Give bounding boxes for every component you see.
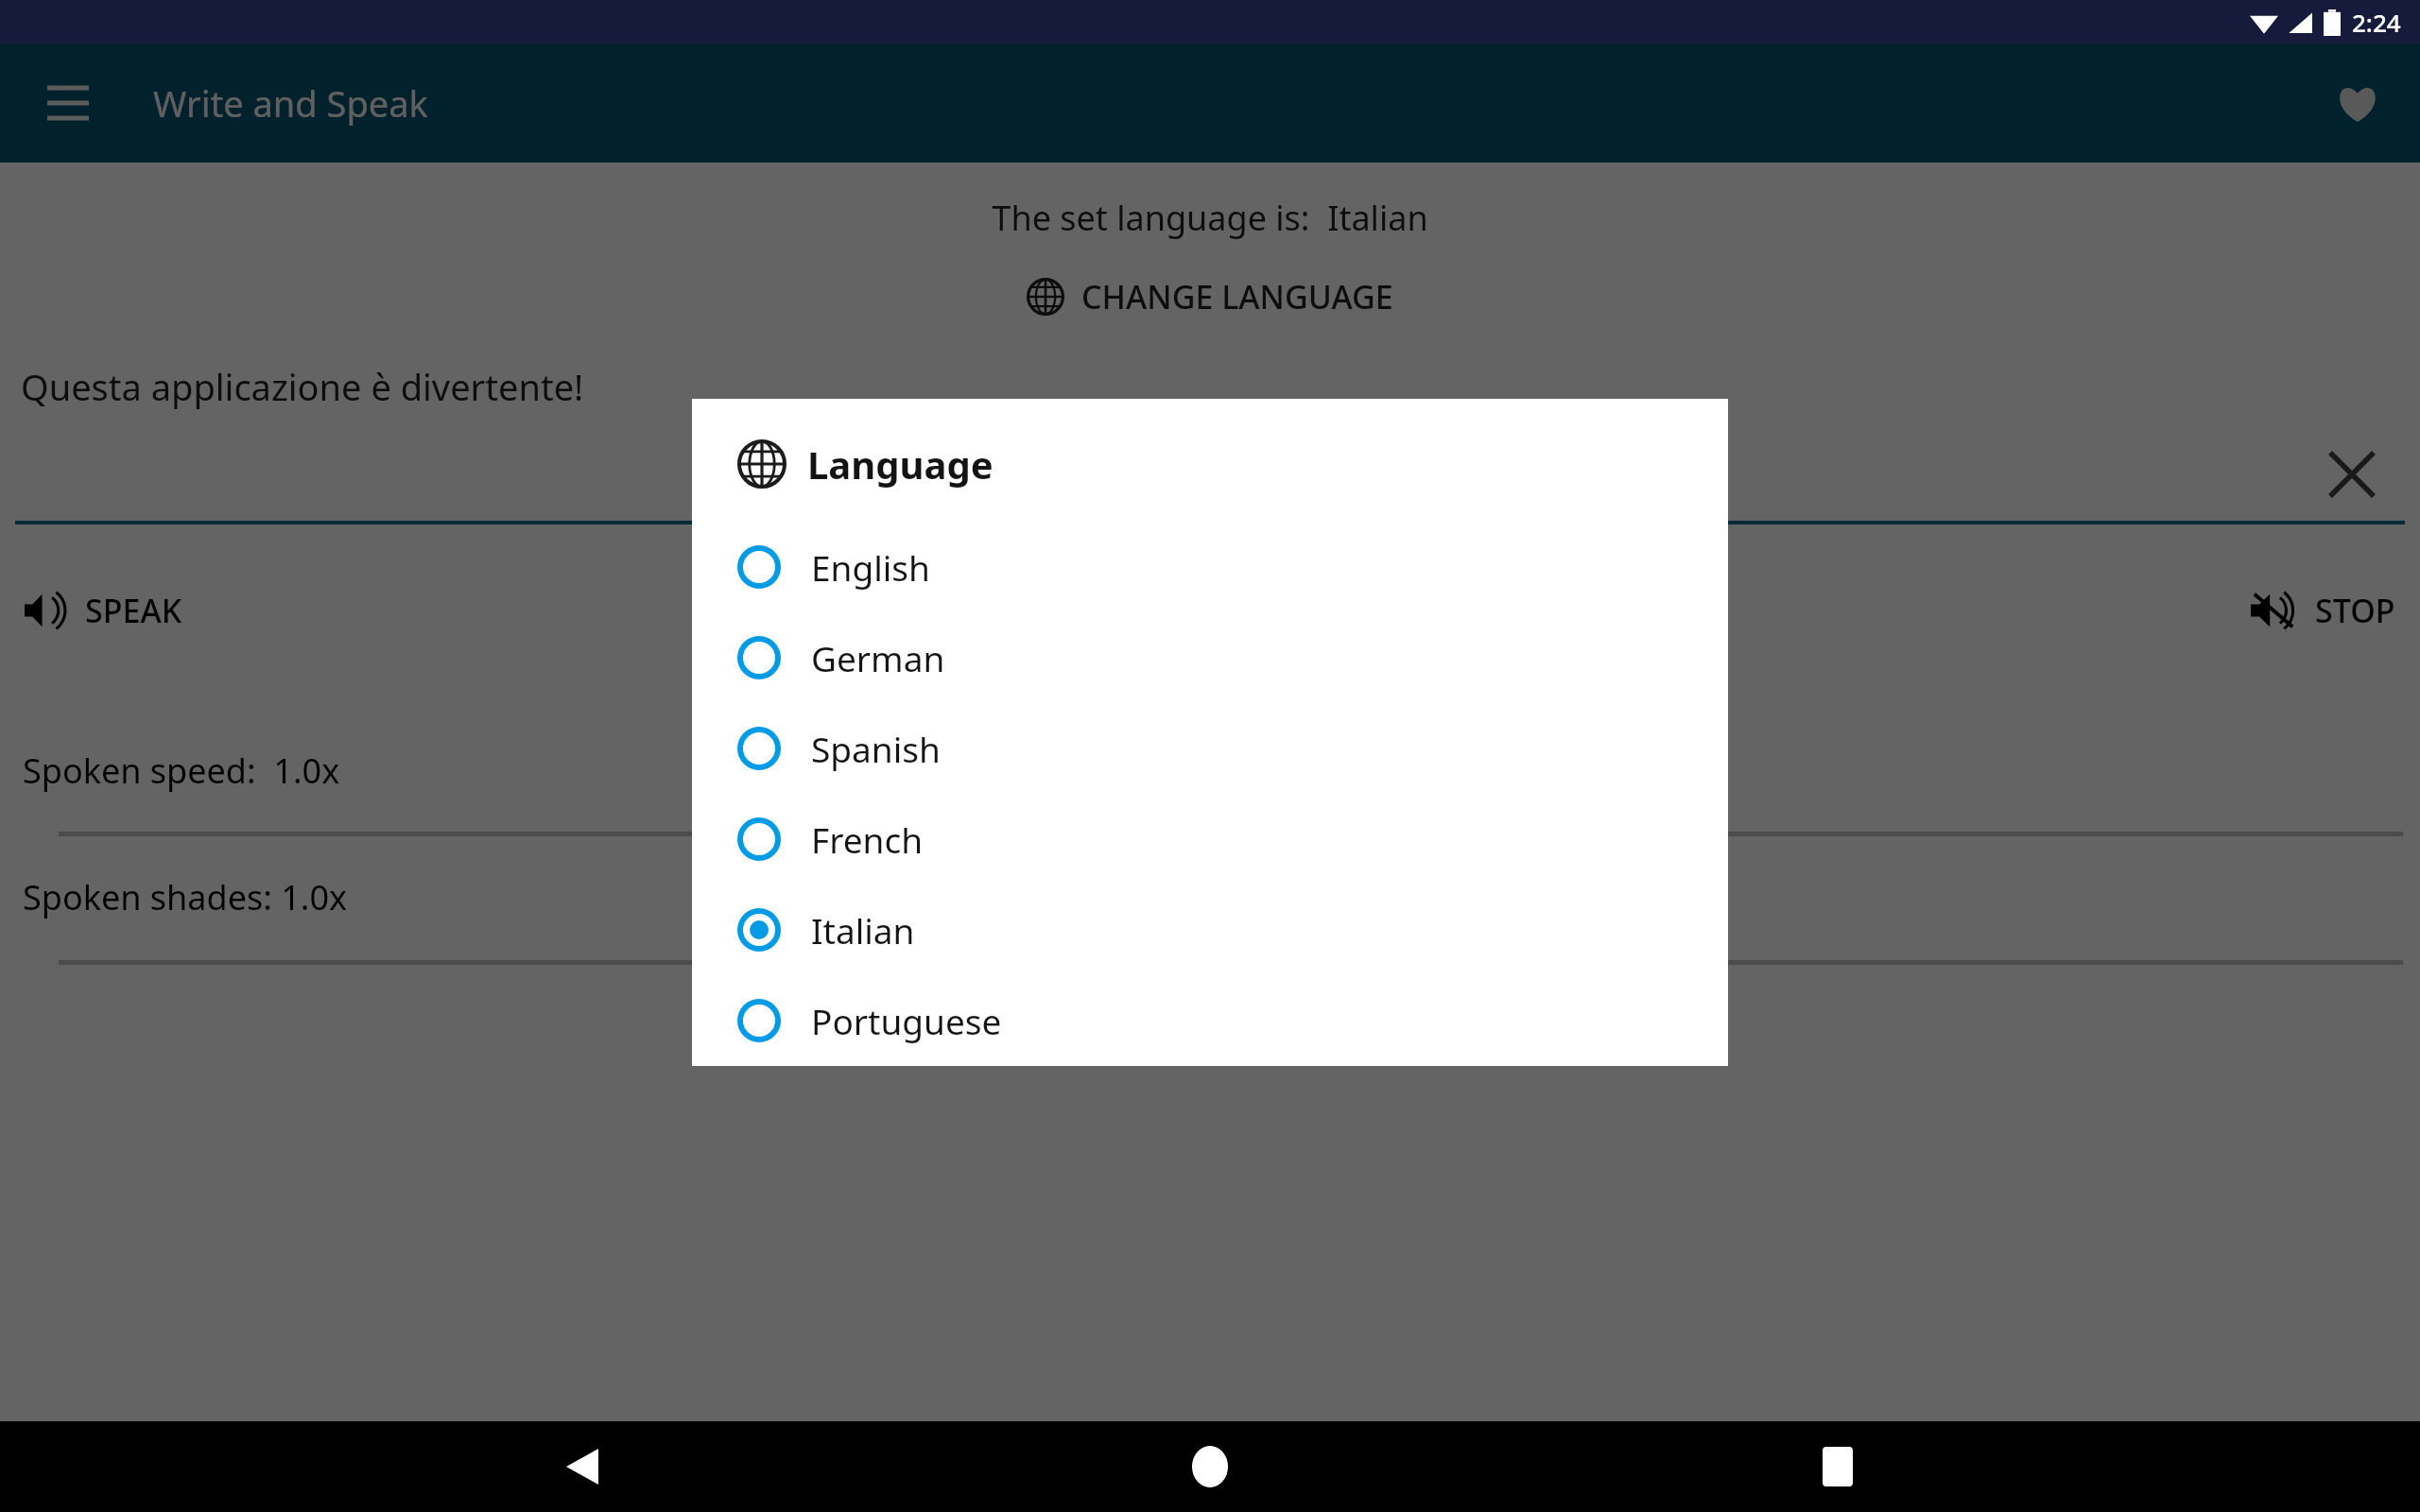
button[interactable]: Italian <box>692 885 1728 975</box>
staticText: Portuguese <box>811 997 1002 1044</box>
button[interactable]: Home <box>1165 1421 1255 1512</box>
staticText: Spoken shades: 1.0x <box>23 874 348 920</box>
staticText: Italian <box>811 906 915 954</box>
staticText: RESET <box>0 1031 2420 1074</box>
button[interactable]: STOP <box>2245 583 2401 638</box>
staticText: Spanish <box>811 725 941 772</box>
staticText: SPEAK <box>85 589 182 632</box>
staticText: 2:24 <box>2352 6 2401 39</box>
staticText: Language <box>807 438 994 490</box>
staticText: The set language is: Italian <box>0 195 2420 241</box>
button[interactable]: English <box>692 522 1728 612</box>
button[interactable]: German <box>692 612 1728 703</box>
button[interactable]: CHANGE LANGUAGE <box>1008 267 1412 326</box>
staticText: Write and Speak <box>153 78 428 128</box>
button[interactable]: SPEAK <box>19 583 188 638</box>
button[interactable]: French <box>692 794 1728 885</box>
staticText: German <box>811 634 945 681</box>
button[interactable]: Spanish <box>692 703 1728 794</box>
button[interactable]: Recent apps <box>1792 1421 1883 1512</box>
button[interactable]: Close <box>2312 435 2392 514</box>
staticText: STOP <box>2315 589 2395 632</box>
button[interactable]: Back <box>537 1421 628 1512</box>
button[interactable]: Menu <box>28 63 108 143</box>
staticText: English <box>811 543 930 591</box>
staticText: Spoken speed: 1.0x <box>23 747 340 794</box>
staticText: French <box>811 816 924 863</box>
button[interactable]: Portuguese <box>692 975 1728 1066</box>
staticText: Questa applicazione è divertente! <box>21 362 584 411</box>
button[interactable]: Favorite <box>2318 63 2397 143</box>
staticText: CHANGE LANGUAGE <box>1081 275 1393 318</box>
